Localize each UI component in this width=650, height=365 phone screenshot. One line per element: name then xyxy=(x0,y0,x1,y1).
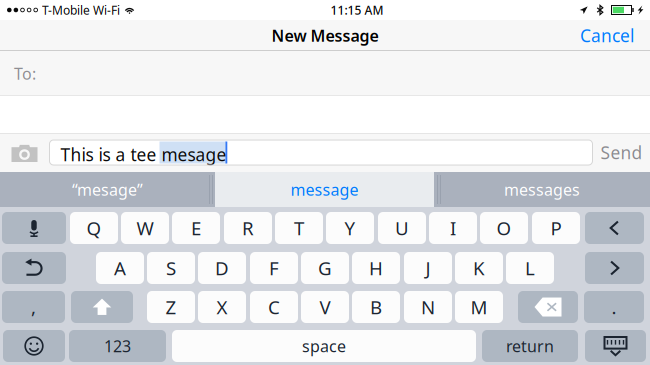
staticText: V xyxy=(319,295,330,319)
button[interactable]: A xyxy=(96,252,144,284)
staticText: B xyxy=(370,295,382,319)
button[interactable]: , xyxy=(2,291,65,323)
staticText: D xyxy=(215,256,229,280)
staticText: Y xyxy=(344,216,355,240)
button[interactable]: N xyxy=(404,291,452,323)
button[interactable]: M xyxy=(455,291,503,323)
button[interactable]: G xyxy=(301,252,349,284)
button[interactable]: Dictate xyxy=(2,212,66,244)
staticText: , xyxy=(31,295,36,319)
button[interactable]: . xyxy=(584,291,644,323)
staticText: W xyxy=(136,216,153,240)
staticText: F xyxy=(269,256,279,280)
button[interactable]: Send xyxy=(593,133,650,172)
button[interactable]: O xyxy=(480,212,528,244)
staticText: E xyxy=(191,216,201,240)
button[interactable]: Shift xyxy=(71,291,133,323)
button[interactable]: E xyxy=(172,212,220,244)
staticText: messages xyxy=(504,179,580,200)
button[interactable]: Y xyxy=(326,212,374,244)
staticText: J xyxy=(425,256,430,280)
button[interactable]: T xyxy=(275,212,323,244)
staticText: 11:15 AM xyxy=(330,2,383,18)
button[interactable]: F xyxy=(250,252,298,284)
button[interactable]: K xyxy=(455,252,503,284)
button[interactable]: Next xyxy=(585,252,644,284)
button[interactable]: P xyxy=(532,212,580,244)
button[interactable]: H xyxy=(352,252,400,284)
button[interactable]: message xyxy=(215,172,434,207)
staticText: G xyxy=(318,256,332,280)
button[interactable]: return xyxy=(482,330,578,362)
staticText: M xyxy=(470,295,487,319)
staticText: K xyxy=(473,256,485,280)
staticText: . xyxy=(611,295,616,319)
staticText: I xyxy=(450,216,456,240)
button[interactable]: C xyxy=(250,291,298,323)
staticText: New Message xyxy=(271,25,378,46)
button[interactable]: W xyxy=(121,212,169,244)
button[interactable]: Delete xyxy=(518,291,578,323)
button[interactable]: Cancel xyxy=(564,20,650,51)
button[interactable]: 123 xyxy=(69,330,166,362)
staticText: L xyxy=(525,256,535,280)
staticText: message xyxy=(290,179,358,200)
staticText: To: xyxy=(14,63,36,84)
button[interactable]: X xyxy=(198,291,246,323)
staticText: X xyxy=(216,295,227,319)
staticText: N xyxy=(421,295,435,319)
button[interactable]: Previous xyxy=(585,212,644,244)
button[interactable]: J xyxy=(404,252,452,284)
button[interactable]: B xyxy=(352,291,400,323)
button[interactable]: R xyxy=(224,212,272,244)
button[interactable]: V xyxy=(301,291,349,323)
button[interactable]: Camera xyxy=(0,133,49,172)
staticText: “mesage” xyxy=(72,179,143,200)
staticText: U xyxy=(395,216,409,240)
staticText: T xyxy=(294,216,304,240)
button[interactable]: Hide keyboard xyxy=(585,330,646,362)
button[interactable]: messages xyxy=(434,172,650,207)
staticText: H xyxy=(369,256,383,280)
button[interactable]: Z xyxy=(147,291,195,323)
button[interactable]: Undo xyxy=(2,252,66,284)
staticText: Cancel xyxy=(580,24,634,47)
staticText: Q xyxy=(86,216,101,240)
staticText: T-Mobile Wi-Fi xyxy=(42,2,120,18)
button[interactable]: I xyxy=(429,212,477,244)
staticText: R xyxy=(242,216,254,240)
button[interactable]: S xyxy=(147,252,195,284)
staticText: 123 xyxy=(104,335,131,357)
button[interactable]: space xyxy=(172,330,476,362)
button[interactable]: Emoji xyxy=(3,330,65,362)
button[interactable]: “mesage” xyxy=(0,172,215,207)
staticText: This is a tee mesage xyxy=(60,143,226,166)
staticText: return xyxy=(506,335,554,357)
button[interactable]: D xyxy=(198,252,246,284)
staticText: Z xyxy=(165,295,176,319)
button[interactable]: L xyxy=(506,252,554,284)
staticText: space xyxy=(302,335,346,357)
staticText: Send xyxy=(600,141,642,164)
button[interactable]: To: xyxy=(0,51,650,96)
staticText: O xyxy=(496,216,511,240)
button[interactable]: Q xyxy=(70,212,118,244)
staticText: S xyxy=(166,256,176,280)
staticText: A xyxy=(114,256,126,280)
button[interactable]: U xyxy=(378,212,426,244)
staticText: C xyxy=(268,295,280,319)
staticText: P xyxy=(550,216,561,240)
